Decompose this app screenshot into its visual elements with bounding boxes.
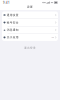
button[interactable]: 关于应用 <box>2 34 58 41</box>
staticText: 9:41 <box>3 1 10 4</box>
staticText: 账号安全 <box>7 21 19 24</box>
button[interactable]: 消息通知 <box>2 26 58 33</box>
staticText: 消息通知 <box>7 28 19 32</box>
staticText: 关于应用 <box>7 36 19 39</box>
staticText: 1.0.2 <box>51 36 54 38</box>
staticText: 中国移动 <box>42 2 46 3</box>
button[interactable]: 退出登录 <box>0 41 60 51</box>
staticText: 通用设置 <box>7 13 19 17</box>
button[interactable]: 通用设置 <box>2 11 58 19</box>
staticText: 退出登录 <box>24 46 36 50</box>
staticText: 设置 <box>27 5 33 8</box>
button[interactable]: 账号安全 <box>2 19 58 26</box>
